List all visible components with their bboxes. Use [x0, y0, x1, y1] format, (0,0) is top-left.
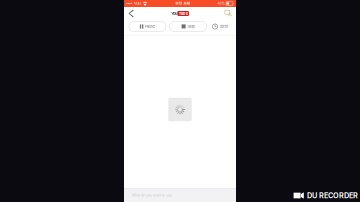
staticText: Pause: [145, 24, 155, 29]
staticText: DU RECORDER: [307, 191, 358, 200]
button[interactable]: Pause: [129, 21, 166, 31]
button[interactable]: Stop: [169, 21, 206, 31]
staticText: What do you want to say: [132, 193, 172, 197]
button[interactable]: What do you want to say: [124, 188, 236, 202]
staticText: 9:51 AM: [176, 1, 190, 6]
staticText: 00:01: [220, 24, 229, 29]
button[interactable]: Back: [124, 7, 148, 20]
staticText: Stop: [187, 24, 194, 29]
staticText: Tube: [179, 11, 188, 16]
button[interactable]: Cast to device: [212, 7, 236, 20]
staticText: 43%: [217, 1, 224, 6]
staticText: AT&T: [134, 1, 142, 6]
staticText: You: [171, 11, 177, 16]
